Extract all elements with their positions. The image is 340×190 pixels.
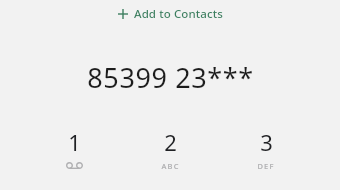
button[interactable]: Dial 1, voicemail xyxy=(43,127,105,170)
staticText: 2 xyxy=(164,127,177,157)
staticText: DEF xyxy=(257,161,275,170)
button[interactable]: 85399 23*** xyxy=(0,59,340,89)
staticText: Add to Contacts xyxy=(134,6,223,22)
button[interactable]: 3 xyxy=(235,127,297,170)
button[interactable]: 2 xyxy=(139,127,201,170)
staticText: ABC xyxy=(161,161,180,170)
staticText: 85399 23*** xyxy=(87,59,254,89)
staticText: 3 xyxy=(260,127,273,157)
staticText: 1 xyxy=(68,127,81,157)
button[interactable]: Add to Contacts xyxy=(0,1,340,27)
